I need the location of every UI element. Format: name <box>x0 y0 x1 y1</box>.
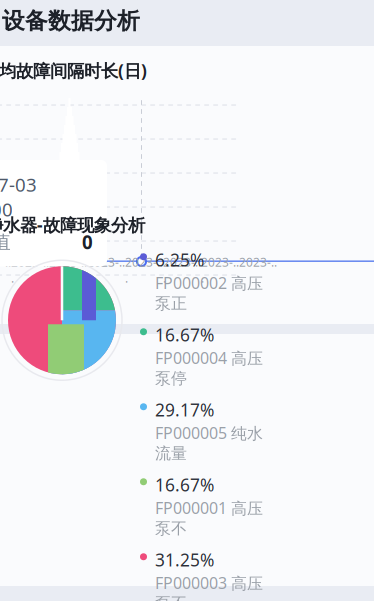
staticText: 29.17% <box>155 398 214 421</box>
staticText: 2023-... <box>201 254 239 286</box>
staticText: FP000002 高压泵正 <box>155 272 263 313</box>
staticText: 2023-... <box>49 254 87 286</box>
staticText: 净水器-故障现象分析 <box>0 213 145 236</box>
staticText: FP000004 高压泵停 <box>155 347 263 388</box>
staticText: FP000001 高压泵不 <box>155 497 263 538</box>
staticText: 2023-... <box>125 254 163 286</box>
staticText: FP000003 高压泵不 <box>155 572 263 601</box>
staticText: 设备数据分析 <box>2 7 140 35</box>
staticText: 6.25% <box>155 248 204 271</box>
staticText: 31.25% <box>155 548 214 571</box>
staticText: 16.67% <box>155 323 214 346</box>
staticText: 2023-... <box>11 254 49 286</box>
staticText: 2023-... <box>0 254 11 286</box>
staticText: 2023-... <box>163 254 201 286</box>
staticText: 2023-... <box>87 254 125 286</box>
staticText: 每周平均故障间隔时长(日) <box>0 59 147 82</box>
staticText: 2023-07-03 00:00:00 <box>0 172 37 222</box>
staticText: 16.67% <box>155 473 214 496</box>
staticText: 统计值 <box>0 230 11 253</box>
staticText: 2023-... <box>239 254 277 286</box>
staticText: FP000005 纯水流量 <box>155 422 263 463</box>
staticText: 0 <box>82 230 93 254</box>
